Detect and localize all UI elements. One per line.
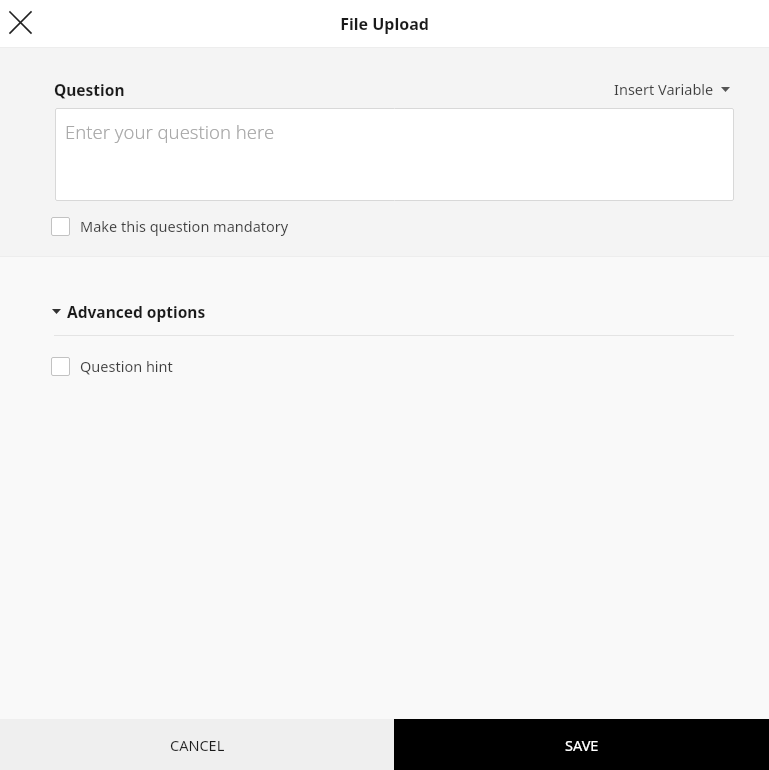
button[interactable]: Enter your question here (55, 108, 734, 201)
button[interactable]: Advanced options (0, 299, 214, 324)
staticText: Make this question mandatory (80, 216, 289, 236)
button[interactable]: Close (0, 0, 42, 44)
staticText: Question hint (80, 356, 173, 376)
staticText: SAVE (565, 735, 599, 755)
staticText: File Upload (0, 13, 769, 35)
staticText: Insert Variable (614, 79, 714, 99)
button[interactable]: Insert Variable (610, 75, 734, 103)
staticText: Advanced options (67, 301, 206, 322)
button[interactable]: Make this question mandatory (0, 212, 769, 240)
staticText: CANCEL (170, 735, 225, 755)
button[interactable]: SAVE (394, 719, 769, 770)
staticText: Question (54, 79, 125, 100)
button[interactable]: Question hint (0, 352, 769, 380)
staticText: Enter your question here (65, 119, 275, 144)
button[interactable]: CANCEL (0, 719, 394, 770)
